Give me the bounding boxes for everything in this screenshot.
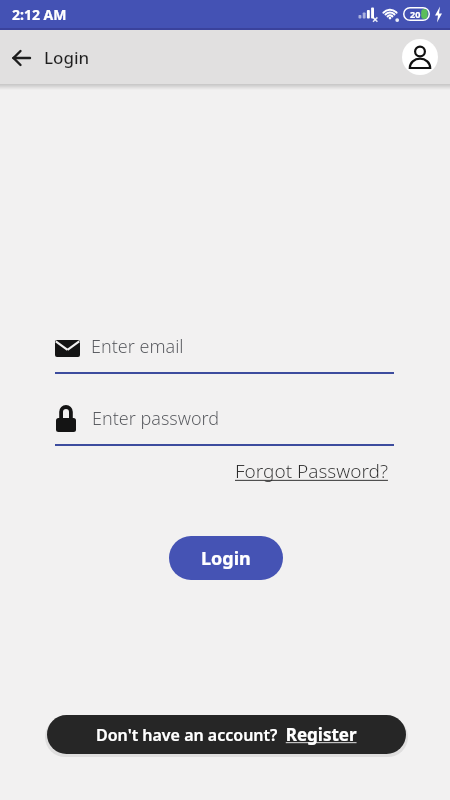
staticText: Enter password (92, 406, 220, 431)
button[interactable]: Don't have an account? Register (47, 715, 406, 754)
staticText: 20 (410, 8, 421, 20)
staticText: Enter email (91, 334, 184, 359)
staticText: Login (201, 546, 251, 571)
staticText: Don't have an account? Register (96, 723, 357, 746)
staticText: 2:12 AM (12, 5, 67, 24)
button[interactable]: Login (169, 536, 283, 580)
button[interactable] (55, 332, 394, 374)
button[interactable]: Forgot Password? (235, 458, 388, 484)
button[interactable] (402, 39, 438, 75)
button[interactable] (12, 48, 32, 68)
staticText: Login (44, 46, 90, 69)
button[interactable] (55, 404, 394, 446)
